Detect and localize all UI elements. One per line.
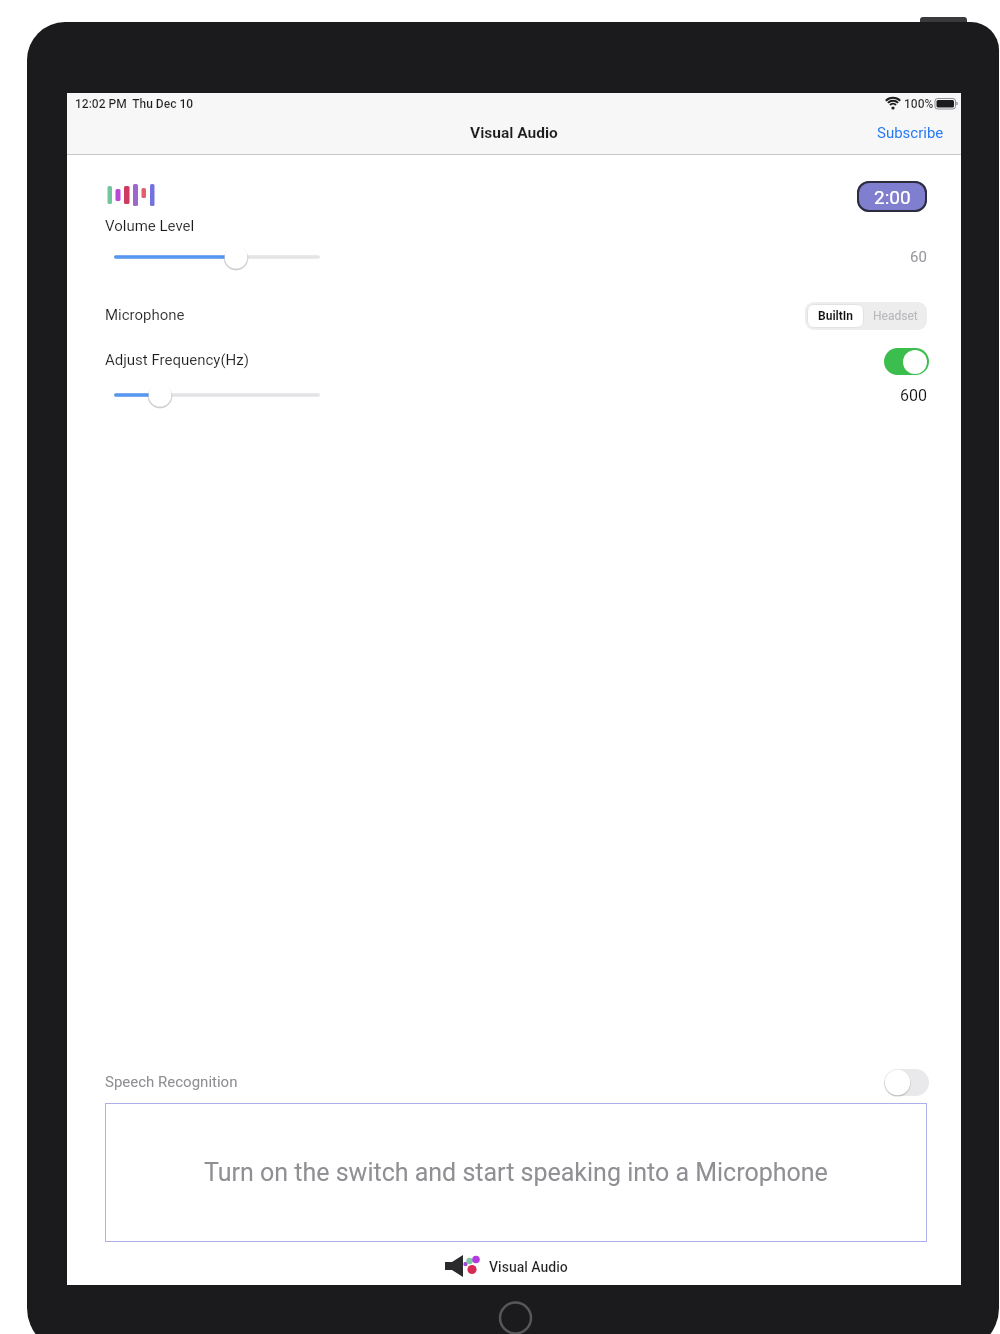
staticText: Headset — [873, 309, 918, 323]
staticText: Subscribe — [877, 124, 944, 142]
staticText: 60 — [910, 248, 927, 266]
staticText: 12:02 PM Thu Dec 10 — [75, 97, 194, 111]
button[interactable] — [884, 1069, 929, 1096]
staticText: Microphone — [105, 306, 185, 324]
button[interactable]: BuiltIn — [807, 304, 864, 328]
staticText: 2:00 — [874, 186, 911, 208]
button[interactable]: Subscribe — [877, 124, 944, 142]
staticText: BuiltIn — [818, 309, 854, 323]
button[interactable]: Headset — [866, 304, 925, 328]
staticText: Volume Level — [105, 217, 195, 235]
button[interactable]: 2:00 — [857, 181, 927, 212]
button[interactable] — [114, 379, 354, 411]
staticText: 100% — [904, 97, 934, 111]
button[interactable] — [884, 348, 929, 375]
staticText: Visual Audio — [489, 1259, 568, 1275]
staticText: 600 — [900, 386, 927, 405]
staticText: Turn on the switch and start speaking in… — [204, 1158, 828, 1187]
staticText: Visual Audio — [470, 124, 558, 142]
staticText: Adjust Frequency(Hz) — [105, 351, 249, 369]
staticText: Speech Recognition — [105, 1073, 238, 1091]
button[interactable] — [114, 241, 354, 273]
